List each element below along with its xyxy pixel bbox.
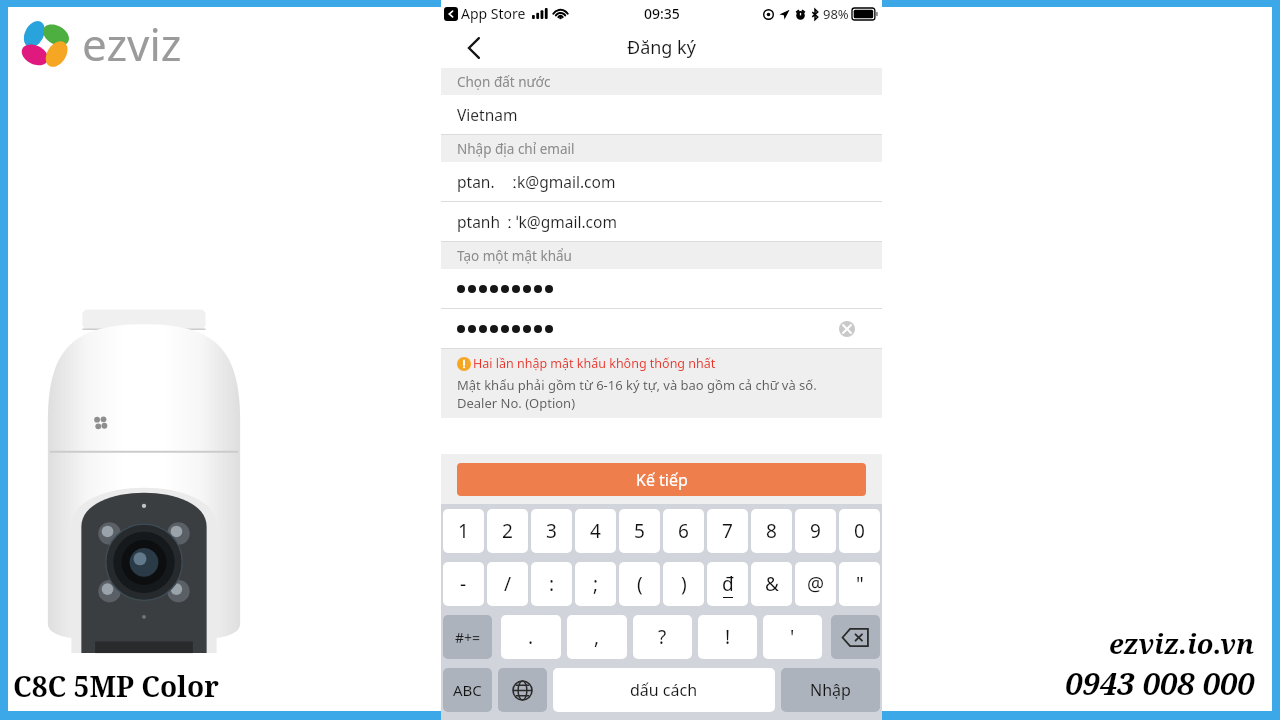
- button[interactable]: /: [487, 562, 528, 606]
- staticText: C8C 5MP Color: [13, 667, 219, 705]
- staticText: ,: [594, 624, 600, 650]
- button[interactable]: .: [501, 615, 561, 659]
- staticText: 2: [502, 518, 513, 544]
- button[interactable]: 8: [751, 509, 792, 553]
- staticText: (: [637, 571, 643, 597]
- staticText: .: [528, 624, 534, 650]
- button[interactable]: -: [443, 562, 484, 606]
- button[interactable]: 0: [839, 509, 880, 553]
- button[interactable]: Clear password: [441, 309, 882, 348]
- staticText: 1: [458, 518, 469, 544]
- staticText: Đăng ký: [627, 35, 696, 60]
- staticText: ptan.: [457, 171, 495, 192]
- staticText: 6: [678, 518, 689, 544]
- staticText: Vietnam: [457, 104, 518, 125]
- button[interactable]: !: [698, 615, 757, 659]
- staticText: ptanh: [457, 211, 500, 232]
- staticText: ː ˈk@gmail.com: [507, 211, 617, 232]
- button[interactable]: 3: [531, 509, 572, 553]
- staticText: 98%: [823, 5, 849, 23]
- button[interactable]: ptan.: [441, 162, 882, 201]
- staticText: đ: [722, 571, 734, 597]
- staticText: ): [681, 571, 687, 597]
- button[interactable]: 5: [619, 509, 660, 553]
- staticText: &: [765, 571, 779, 597]
- staticText: 0: [854, 518, 865, 544]
- button[interactable]: dấu cách: [553, 668, 775, 712]
- staticText: !: [725, 624, 731, 650]
- button[interactable]: [441, 269, 882, 308]
- staticText: ezviz.io.vn: [1109, 625, 1255, 662]
- button[interactable]: ABC: [443, 668, 492, 712]
- staticText: Nhập địa chỉ email: [457, 140, 575, 158]
- button[interactable]: ?: [633, 615, 692, 659]
- staticText: 8: [766, 518, 777, 544]
- staticText: Tạo một mật khẩu: [457, 247, 572, 265]
- staticText: Nhập: [810, 679, 851, 701]
- staticText: ːk@gmail.com: [512, 171, 616, 192]
- staticText: -: [460, 571, 467, 597]
- staticText: ?: [658, 624, 667, 650]
- staticText: 5: [634, 518, 645, 544]
- staticText: App Store: [461, 4, 526, 23]
- staticText: ezviz: [82, 14, 182, 74]
- staticText: Hai lần nhập mật khẩu không thống nhất: [473, 355, 716, 372]
- staticText: Dealer No. (Option): [457, 394, 576, 412]
- staticText: 09:35: [644, 4, 680, 23]
- button[interactable]: Nhập: [781, 668, 880, 712]
- staticText: ': [790, 624, 795, 650]
- button[interactable]: #+=: [443, 615, 492, 659]
- staticText: 9: [810, 518, 821, 544]
- button[interactable]: ": [839, 562, 880, 606]
- button[interactable]: Backspace: [831, 615, 880, 659]
- staticText: ": [856, 571, 864, 597]
- staticText: 3: [546, 518, 557, 544]
- button[interactable]: ,: [567, 615, 627, 659]
- button[interactable]: 9: [795, 509, 836, 553]
- staticText: @: [807, 571, 825, 597]
- button[interactable]: ': [763, 615, 822, 659]
- staticText: 0943 008 000: [1065, 662, 1255, 704]
- button[interactable]: đ: [707, 562, 748, 606]
- button[interactable]: Clear password: [835, 317, 859, 341]
- staticText: dấu cách: [630, 679, 698, 701]
- button[interactable]: (: [619, 562, 660, 606]
- staticText: /: [504, 571, 512, 597]
- button[interactable]: Change keyboard language: [498, 668, 547, 712]
- button[interactable]: 4: [575, 509, 616, 553]
- button[interactable]: Vietnam: [441, 95, 882, 134]
- staticText: ;: [593, 571, 599, 597]
- button[interactable]: Kế tiếp: [457, 463, 866, 496]
- button[interactable]: :: [531, 562, 572, 606]
- button[interactable]: @: [795, 562, 836, 606]
- staticText: Mật khẩu phải gồm từ 6-16 ký tự, và bao …: [457, 376, 817, 394]
- button[interactable]: &: [751, 562, 792, 606]
- staticText: Chọn đất nước: [457, 73, 551, 91]
- staticText: :: [549, 571, 555, 597]
- button[interactable]: 2: [487, 509, 528, 553]
- staticText: ABC: [453, 680, 482, 700]
- button[interactable]: 1: [443, 509, 484, 553]
- staticText: 7: [722, 518, 733, 544]
- button[interactable]: ;: [575, 562, 616, 606]
- button[interactable]: ptanh: [441, 202, 882, 241]
- button[interactable]: 6: [663, 509, 704, 553]
- staticText: Kế tiếp: [636, 469, 688, 491]
- button[interactable]: ): [663, 562, 704, 606]
- button[interactable]: 7: [707, 509, 748, 553]
- button[interactable]: Back: [456, 30, 492, 66]
- staticText: 4: [590, 518, 601, 544]
- staticText: #+=: [455, 628, 481, 647]
